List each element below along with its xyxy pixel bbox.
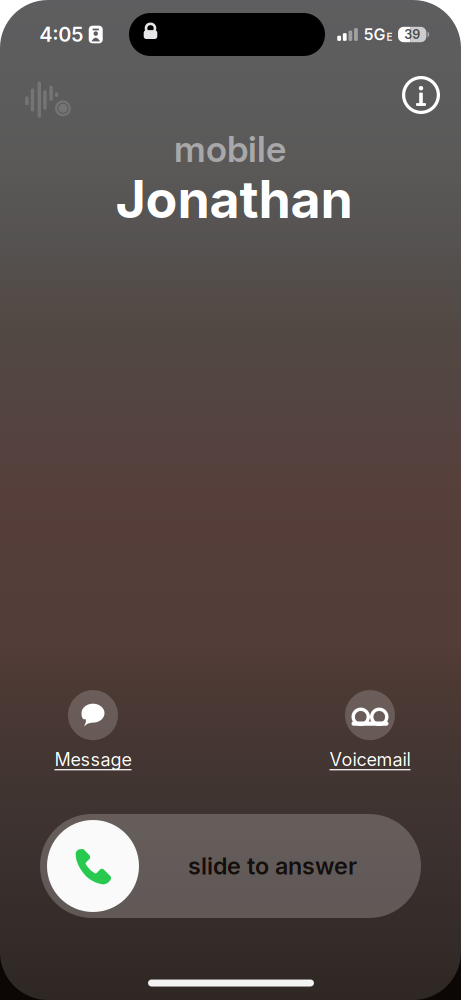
staticText: mobile [174, 127, 286, 171]
button[interactable]: Slide to answer [40, 814, 421, 918]
staticText: Jonathan [115, 167, 352, 230]
staticText: 4:05 [39, 22, 83, 47]
staticText: slide to answer [188, 852, 357, 880]
button[interactable]: Message [28, 690, 158, 770]
staticText: 5G [364, 25, 386, 44]
staticText: Voicemail [329, 749, 410, 770]
button[interactable]: Call info [393, 67, 449, 123]
staticText: E [387, 31, 393, 43]
staticText: Message [54, 749, 131, 770]
button[interactable]: Voicemail [305, 690, 435, 770]
staticText: 39 [404, 27, 420, 42]
